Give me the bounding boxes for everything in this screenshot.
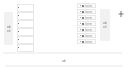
button[interactable]: ab: [4, 12, 13, 45]
staticText: ab: [62, 59, 66, 63]
staticText: lorem: [85, 34, 93, 38]
button[interactable]: [17, 44, 34, 52]
staticText: lorem: [85, 40, 93, 44]
button[interactable]: lorem: [77, 33, 96, 38]
button[interactable]: lorem: [77, 3, 96, 8]
staticText: cd: [7, 29, 11, 33]
button[interactable]: [17, 36, 34, 44]
staticText: cd: [103, 25, 107, 29]
button[interactable]: ab: [100, 9, 110, 41]
button[interactable]: [17, 28, 34, 36]
button[interactable]: Add: [115, 8, 126, 19]
staticText: lorem: [85, 4, 93, 8]
staticText: ab: [103, 21, 107, 25]
staticText: lorem: [85, 16, 93, 20]
button[interactable]: lorem: [77, 9, 96, 14]
button[interactable]: lorem: [77, 27, 96, 32]
button[interactable]: lorem: [77, 21, 96, 26]
button[interactable]: lorem: [77, 15, 96, 20]
button[interactable]: [17, 4, 34, 12]
staticText: ab: [7, 25, 11, 29]
button[interactable]: [17, 12, 34, 20]
staticText: lorem: [85, 10, 93, 14]
button[interactable]: [17, 20, 34, 28]
staticText: lorem: [85, 28, 93, 32]
button[interactable]: lorem: [77, 39, 96, 44]
staticText: lorem: [85, 22, 93, 26]
